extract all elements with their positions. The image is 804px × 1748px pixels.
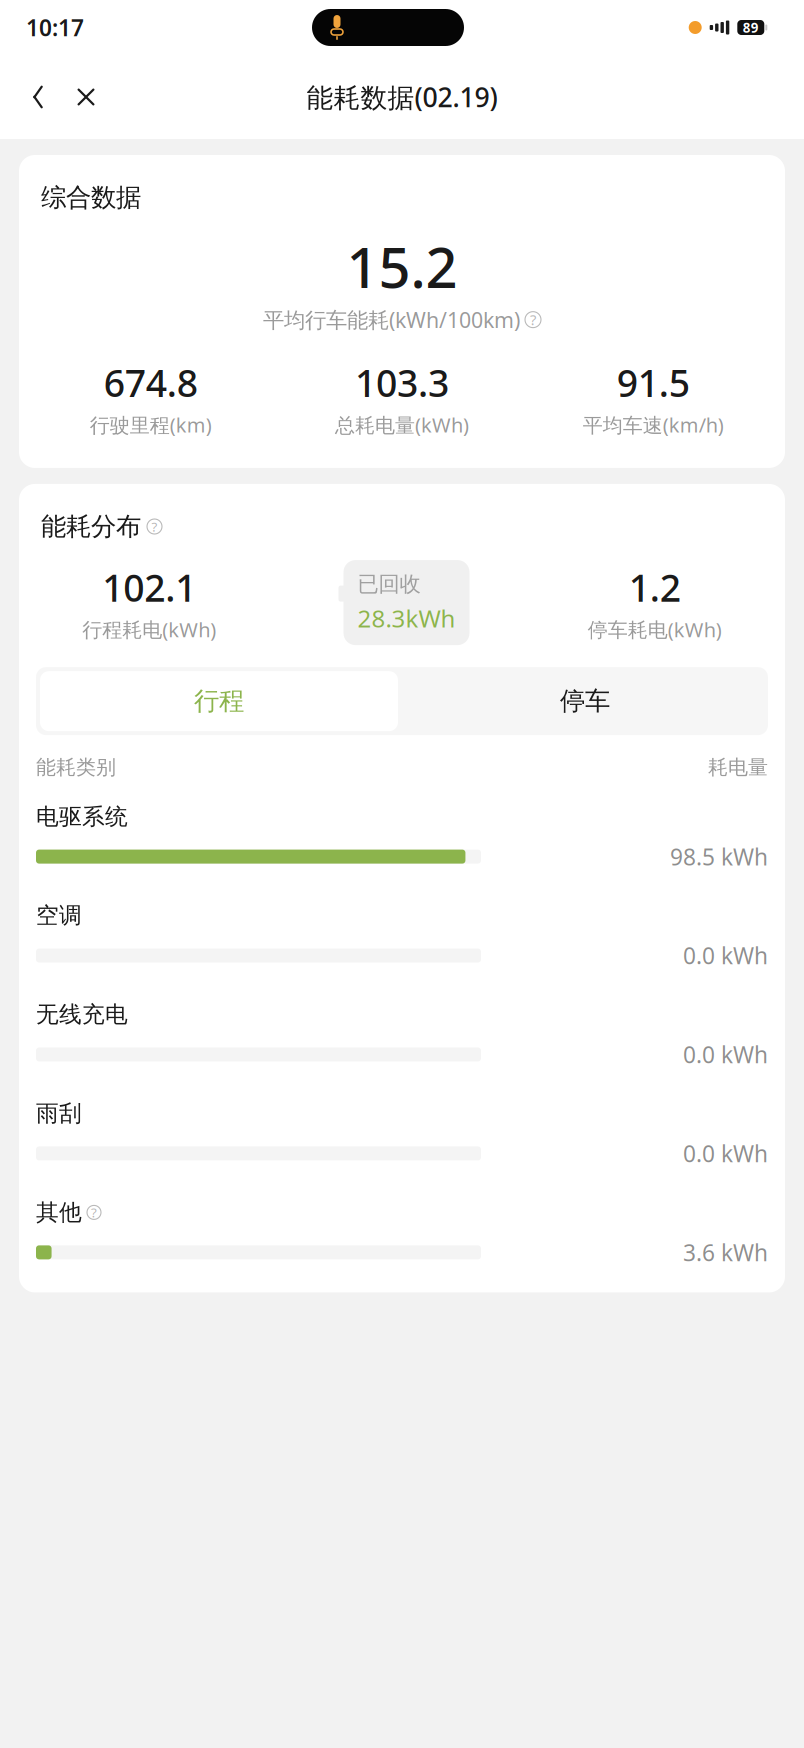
staticText: 28.3kWh [357,602,455,634]
staticText: 91.5 [617,358,690,407]
staticText: 1.2 [629,562,681,612]
button[interactable]: 帮助 [87,1205,101,1219]
staticText: 能耗数据(02.19) [306,79,497,115]
staticText: 102.1 [102,562,196,612]
staticText: 3.6 kWh [683,1237,768,1267]
staticText: 行程 [194,686,244,717]
button[interactable]: 帮助 [525,312,541,328]
staticText: 0.0 kWh [683,1039,768,1069]
staticText: 0.0 kWh [683,940,768,971]
button[interactable]: Back [14,73,62,121]
staticText: 雨刮 [36,1099,82,1127]
staticText: 15.2 [346,229,457,303]
staticText: 能耗类别 [36,755,116,780]
staticText: 停车耗电(kWh) [588,616,722,643]
staticText: 行程耗电(kWh) [82,616,216,643]
button[interactable]: 停车 [402,667,768,735]
button[interactable]: 行程 [36,667,402,735]
staticText: 103.3 [355,358,449,407]
staticText: 89 [743,19,759,36]
staticText: 电驱系统 [36,803,128,830]
staticText: 其他 [36,1198,82,1226]
staticText: 耗电量 [708,755,768,780]
staticText: 已回收 [357,571,420,597]
staticText: 674.8 [104,358,198,407]
staticText: 能耗分布 [41,511,141,542]
staticText: 停车 [560,686,610,717]
staticText: ? [91,1203,97,1221]
staticText: 平均车速(km/h) [583,411,724,438]
button[interactable]: Close [62,73,110,121]
staticText: 98.5 kWh [670,841,768,872]
staticText: 综合数据 [41,182,141,213]
staticText: 行驶里程(km) [90,411,212,438]
staticText: ? [530,310,536,329]
staticText: 平均行车能耗(kWh/100km) [263,305,520,334]
staticText: 无线充电 [36,1001,128,1028]
staticText: 0.0 kWh [683,1138,768,1168]
button[interactable]: 帮助 [147,519,162,534]
staticText: 总耗电量(kWh) [335,411,469,438]
staticText: 10:17 [26,12,84,42]
staticText: 空调 [36,902,82,929]
staticText: ? [151,518,157,535]
